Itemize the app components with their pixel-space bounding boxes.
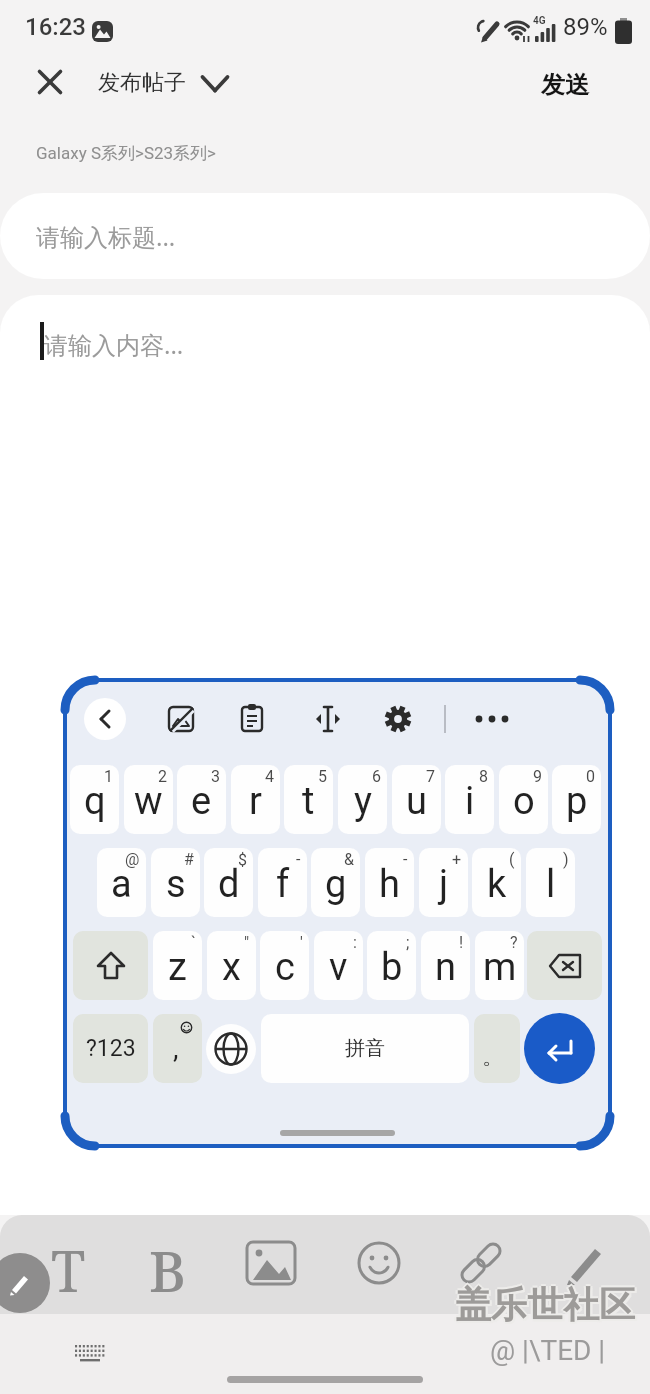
button[interactable]: h [365, 848, 414, 917]
staticText: 盖乐世社区 [457, 1284, 637, 1329]
button[interactable]: f [258, 848, 307, 917]
button[interactable] [562, 1240, 608, 1286]
button[interactable] [73, 1343, 107, 1365]
staticText: - [296, 850, 301, 869]
button[interactable]: a [97, 848, 146, 917]
button[interactable] [84, 698, 126, 740]
staticText: 请输入内容... [44, 328, 184, 361]
button[interactable] [73, 931, 148, 1000]
staticText: 发布帖子 [98, 69, 186, 97]
button[interactable]: i [445, 765, 494, 834]
button[interactable]: x [207, 931, 256, 1000]
staticText: e [191, 779, 212, 824]
button[interactable] [0, 1253, 50, 1313]
staticText: 盖乐世社区 [455, 1280, 635, 1325]
staticText: + [452, 850, 462, 869]
staticText: ( [509, 850, 515, 869]
button[interactable] [30, 62, 70, 102]
staticText: ?123 [86, 1035, 136, 1062]
button[interactable]: t [284, 765, 333, 834]
button[interactable]: b [367, 931, 416, 1000]
button[interactable]: c [260, 931, 309, 1000]
button[interactable]: 发送 [541, 70, 589, 100]
staticText: 9 [533, 767, 542, 786]
staticText: a [111, 862, 132, 907]
button[interactable]: r [231, 765, 280, 834]
button[interactable] [356, 1240, 402, 1286]
button[interactable] [383, 704, 413, 734]
button[interactable]: l [526, 848, 575, 917]
staticText: @ |\TED | [490, 1334, 606, 1367]
button[interactable]: B [137, 1232, 197, 1292]
button[interactable] [524, 1013, 595, 1084]
staticText: B [149, 1232, 186, 1292]
staticText: $ [238, 850, 247, 869]
button[interactable] [458, 1240, 504, 1286]
button[interactable]: 拼音 [261, 1014, 469, 1083]
staticText: 盖乐世社区 [453, 1282, 633, 1327]
button[interactable]: 请输入内容... [0, 295, 650, 1215]
button[interactable]: s [151, 848, 200, 917]
button[interactable]: 请输入标题... [0, 193, 650, 279]
staticText: z [168, 945, 187, 990]
button[interactable]: y [338, 765, 387, 834]
button[interactable]: o [499, 765, 548, 834]
staticText: u [406, 779, 427, 824]
staticText: 8 [479, 767, 488, 786]
button[interactable]: w [124, 765, 173, 834]
button[interactable]: q [70, 765, 119, 834]
staticText: 拼音 [345, 1036, 385, 1061]
staticText: 盖乐世社区 [457, 1282, 637, 1327]
button[interactable]: z [153, 931, 202, 1000]
button[interactable] [313, 705, 343, 735]
staticText: ' [300, 933, 303, 952]
staticText: l [546, 862, 556, 907]
staticText: v [329, 945, 348, 990]
staticText: c [275, 945, 295, 990]
staticText: 5 [318, 767, 327, 786]
staticText: y [354, 779, 372, 824]
button[interactable]: , [153, 1014, 202, 1083]
button[interactable] [238, 704, 266, 732]
staticText: n [435, 945, 456, 990]
button[interactable]: T [38, 1232, 98, 1292]
staticText: - [403, 850, 408, 869]
button[interactable] [167, 705, 195, 733]
staticText: 发送 [541, 70, 589, 100]
staticText: j [439, 862, 449, 907]
button[interactable] [206, 1024, 256, 1074]
staticText: t [302, 779, 315, 824]
staticText: 4G [533, 15, 546, 27]
staticText: ? [510, 933, 518, 952]
button[interactable]: m [475, 931, 524, 1000]
button[interactable]: 发布帖子 [98, 69, 186, 97]
staticText: g [325, 862, 347, 907]
staticText: d [218, 862, 240, 907]
button[interactable]: ?123 [73, 1014, 148, 1083]
button[interactable]: n [421, 931, 470, 1000]
staticText: : [353, 933, 357, 952]
button[interactable]: e [177, 765, 226, 834]
staticText: s [166, 862, 186, 907]
button[interactable] [472, 712, 512, 726]
staticText: q [84, 779, 106, 824]
button[interactable]: j [419, 848, 468, 917]
staticText: 89% [563, 13, 608, 41]
staticText: # [184, 850, 194, 869]
button[interactable]: p [552, 765, 601, 834]
staticText: ) [563, 850, 569, 869]
button[interactable]: 。 [474, 1014, 520, 1083]
button[interactable]: v [314, 931, 363, 1000]
staticText: & [344, 850, 354, 869]
staticText: 2 [158, 767, 167, 786]
button[interactable]: d [204, 848, 253, 917]
staticText: 4 [265, 767, 274, 786]
button[interactable] [527, 931, 602, 1000]
button[interactable]: u [392, 765, 441, 834]
staticText: ` [191, 933, 196, 952]
staticText: m [483, 945, 517, 990]
button[interactable]: g [311, 848, 360, 917]
staticText: x [222, 945, 241, 990]
button[interactable]: k [472, 848, 521, 917]
button[interactable] [245, 1240, 297, 1286]
